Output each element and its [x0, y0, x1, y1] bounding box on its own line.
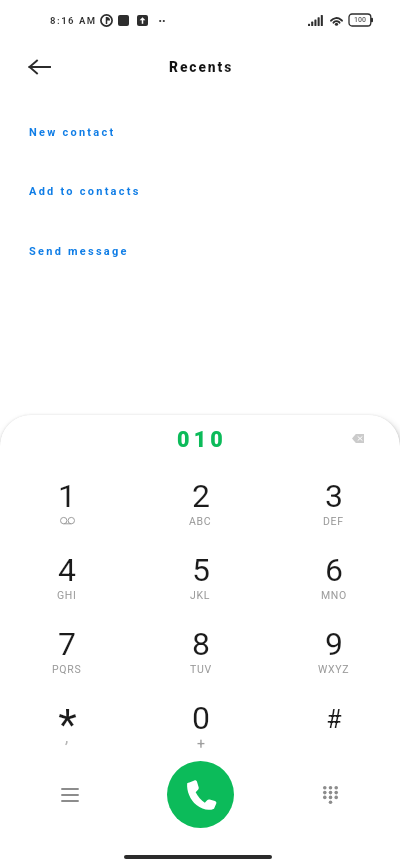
- staticText: 2: [192, 477, 210, 515]
- staticText: 5: [192, 551, 210, 589]
- button[interactable]: New contact: [0, 109, 400, 155]
- staticText: PQRS: [52, 663, 82, 675]
- button[interactable]: 4: [0, 533, 134, 607]
- staticText: New contact: [29, 126, 116, 139]
- button[interactable]: 8: [134, 607, 267, 681]
- button[interactable]: 1: [0, 459, 134, 533]
- button[interactable]: Backspace: [339, 419, 377, 457]
- button[interactable]: 3: [267, 459, 400, 533]
- staticText: ABC: [189, 515, 212, 527]
- staticText: #: [326, 705, 342, 734]
- staticText: 6: [325, 551, 343, 589]
- button[interactable]: Back: [17, 45, 61, 89]
- staticText: 9: [325, 625, 343, 663]
- staticText: 0: [192, 699, 210, 737]
- staticText: 3: [325, 477, 343, 515]
- button[interactable]: #: [267, 681, 400, 755]
- staticText: MNO: [321, 589, 347, 601]
- staticText: 1: [58, 477, 76, 515]
- staticText: Send message: [29, 245, 129, 258]
- button[interactable]: 5: [134, 533, 267, 607]
- button[interactable]: 2: [134, 459, 267, 533]
- staticText: DEF: [323, 515, 344, 527]
- staticText: 8: [192, 625, 210, 663]
- button[interactable]: Call log: [48, 773, 92, 817]
- staticText: +: [197, 736, 205, 752]
- staticText: ,: [65, 728, 69, 747]
- button[interactable]: 6: [267, 533, 400, 607]
- staticText: Add to contacts: [29, 185, 141, 198]
- staticText: 8:16 AM: [50, 15, 97, 26]
- button[interactable]: 0: [134, 681, 267, 755]
- staticText: TUV: [190, 663, 212, 675]
- button[interactable]: *: [0, 681, 134, 755]
- staticText: JKL: [190, 589, 211, 601]
- staticText: 4: [58, 551, 76, 589]
- staticText: WXYZ: [318, 663, 350, 675]
- staticText: 010: [177, 427, 227, 452]
- staticText: GHI: [57, 589, 77, 601]
- button[interactable]: Send message: [0, 228, 400, 274]
- button[interactable]: Dialpad: [308, 773, 352, 817]
- staticText: *: [58, 699, 77, 749]
- staticText: Recents: [169, 59, 234, 75]
- staticText: 7: [58, 625, 76, 663]
- staticText: 100: [354, 16, 366, 24]
- button[interactable]: 7: [0, 607, 134, 681]
- button[interactable]: 9: [267, 607, 400, 681]
- button[interactable]: Add to contacts: [0, 168, 400, 214]
- button[interactable]: Call: [167, 761, 234, 828]
